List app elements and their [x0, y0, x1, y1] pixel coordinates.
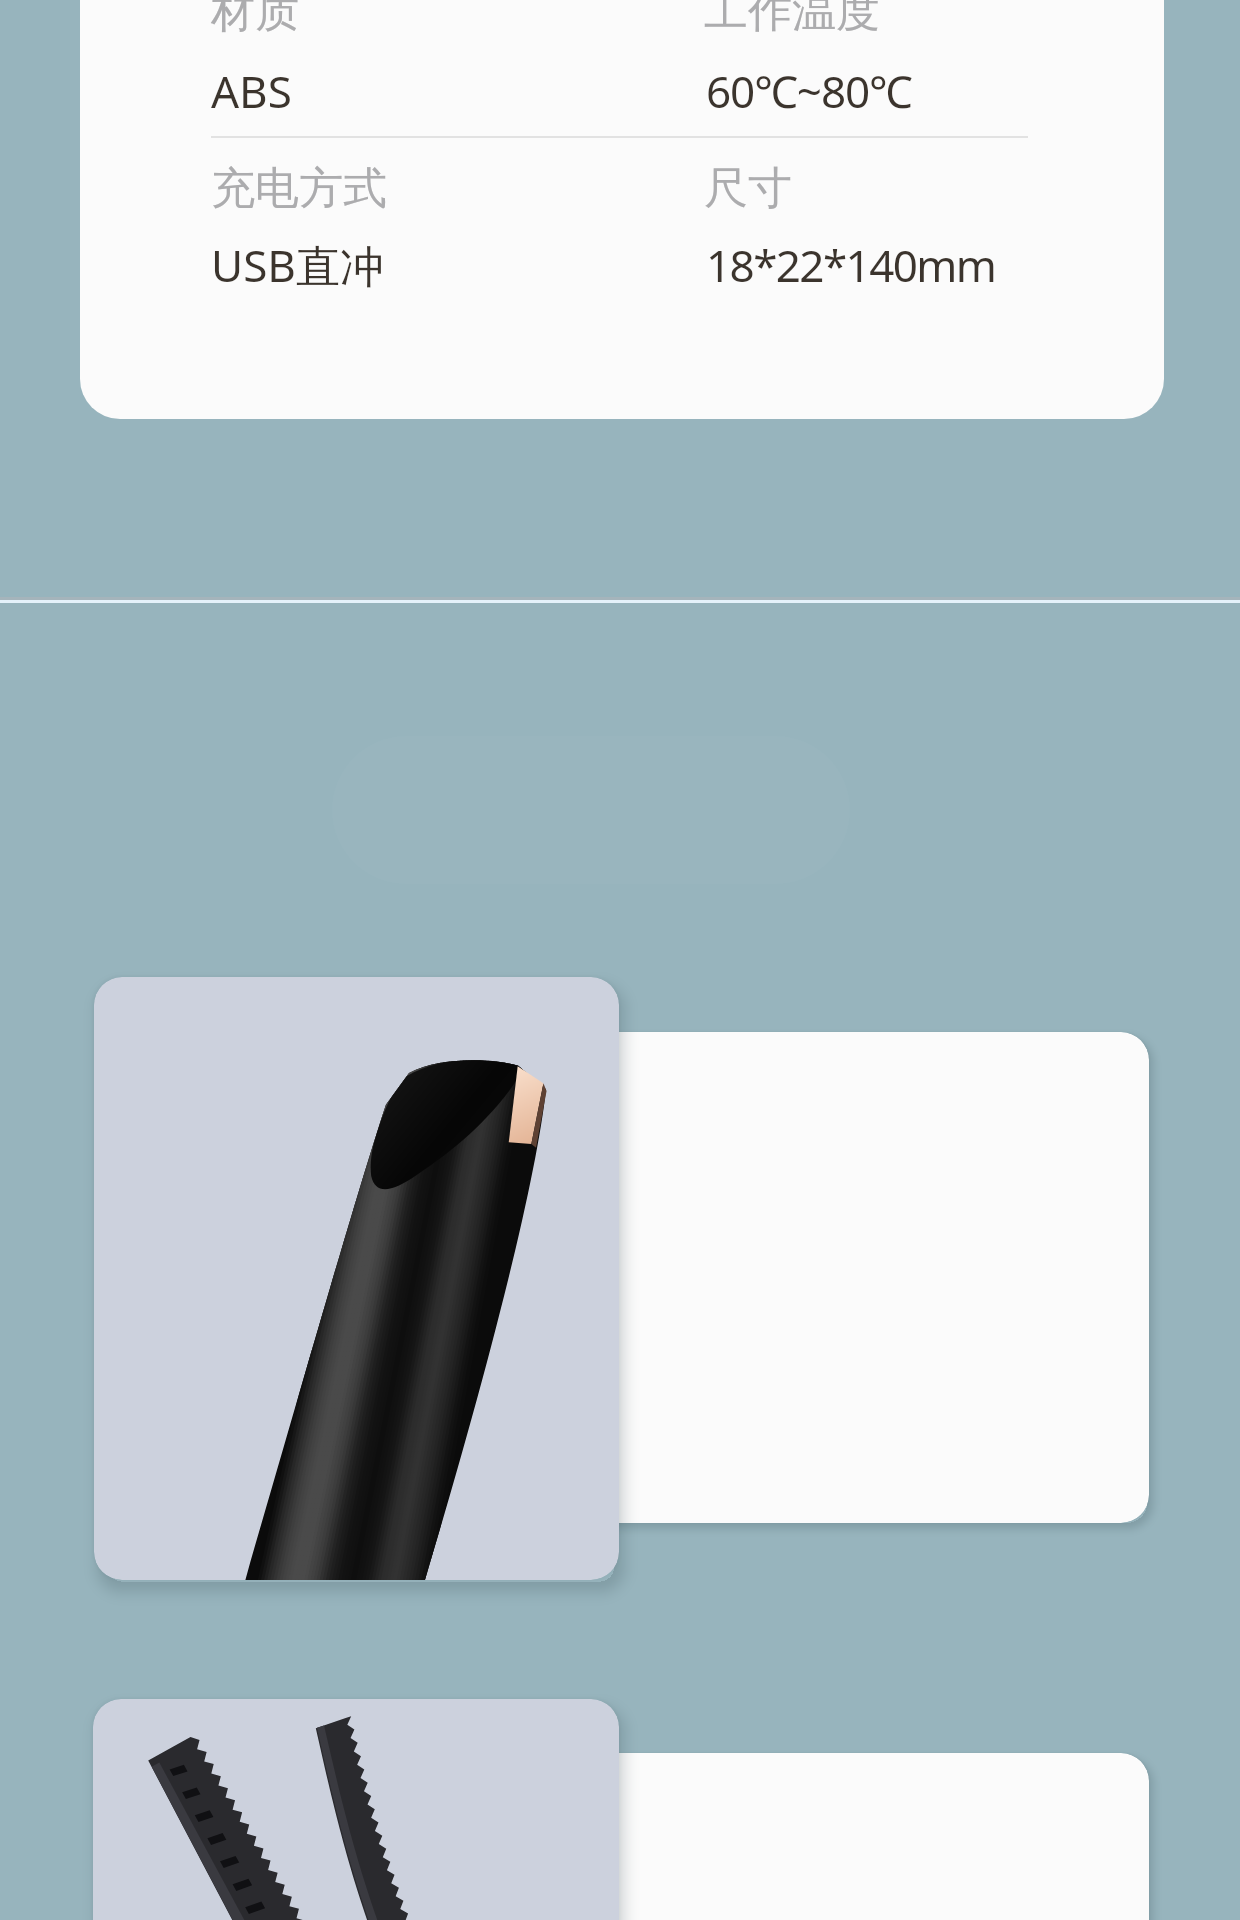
- staticText: 尺寸: [704, 161, 792, 216]
- button[interactable]: Detail card: [520, 1032, 1149, 1523]
- button[interactable]: Product photo: trimmer body: [94, 977, 619, 1580]
- staticText: 18*22*140mm: [706, 235, 996, 295]
- staticText: 60℃~80℃: [706, 61, 912, 121]
- staticText: 材质: [211, 0, 299, 39]
- button[interactable]: Detail card: [520, 1753, 1149, 1920]
- staticText: USB直冲: [211, 235, 384, 295]
- button[interactable]: Product photo: comb attachments: [93, 1699, 619, 1920]
- staticText: 工作温度: [704, 0, 880, 39]
- staticText: 充电方式: [211, 161, 387, 216]
- staticText: ABS: [211, 61, 292, 121]
